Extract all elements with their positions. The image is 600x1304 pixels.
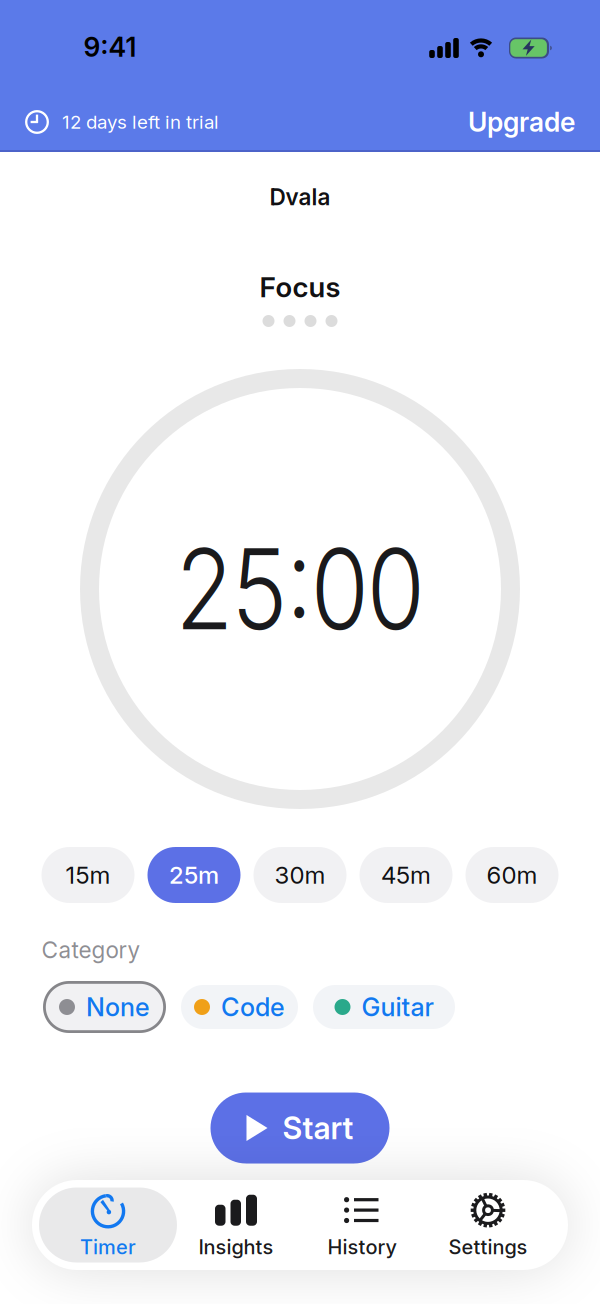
- staticText: Dvala: [269, 184, 330, 210]
- button[interactable]: Start: [210, 1092, 389, 1163]
- staticText: Timer: [80, 1235, 136, 1259]
- button[interactable]: History: [292, 1185, 432, 1265]
- staticText: 12 days left in trial: [62, 111, 219, 133]
- staticText: None: [86, 992, 150, 1022]
- staticText: Insights: [198, 1235, 273, 1259]
- staticText: History: [327, 1235, 396, 1259]
- button[interactable]: Code: [181, 981, 298, 1033]
- staticText: 15m: [65, 861, 110, 889]
- staticText: 45m: [381, 861, 431, 889]
- button[interactable]: None: [43, 981, 166, 1033]
- staticText: Settings: [448, 1235, 527, 1259]
- staticText: Upgrade: [468, 106, 575, 138]
- staticText: Focus: [259, 270, 340, 303]
- staticText: 25m: [169, 861, 219, 889]
- staticText: 30m: [274, 861, 325, 889]
- button[interactable]: Settings: [418, 1185, 558, 1265]
- button[interactable]: 15m: [41, 847, 134, 903]
- button[interactable]: 25m: [147, 847, 240, 903]
- staticText: 9:41: [83, 31, 136, 63]
- staticText: 60m: [486, 861, 537, 889]
- staticText: 25:00: [153, 524, 446, 654]
- staticText: Start: [282, 1110, 353, 1146]
- button[interactable]: 45m: [359, 847, 452, 903]
- button[interactable]: 30m: [253, 847, 346, 903]
- button[interactable]: Guitar: [313, 981, 455, 1033]
- button[interactable]: Upgrade: [468, 106, 575, 138]
- button[interactable]: Timer: [38, 1185, 178, 1265]
- button[interactable]: Insights: [166, 1185, 306, 1265]
- staticText: Guitar: [361, 992, 433, 1022]
- staticText: Code: [221, 992, 285, 1022]
- button[interactable]: 60m: [465, 847, 558, 903]
- staticText: Category: [41, 937, 140, 963]
